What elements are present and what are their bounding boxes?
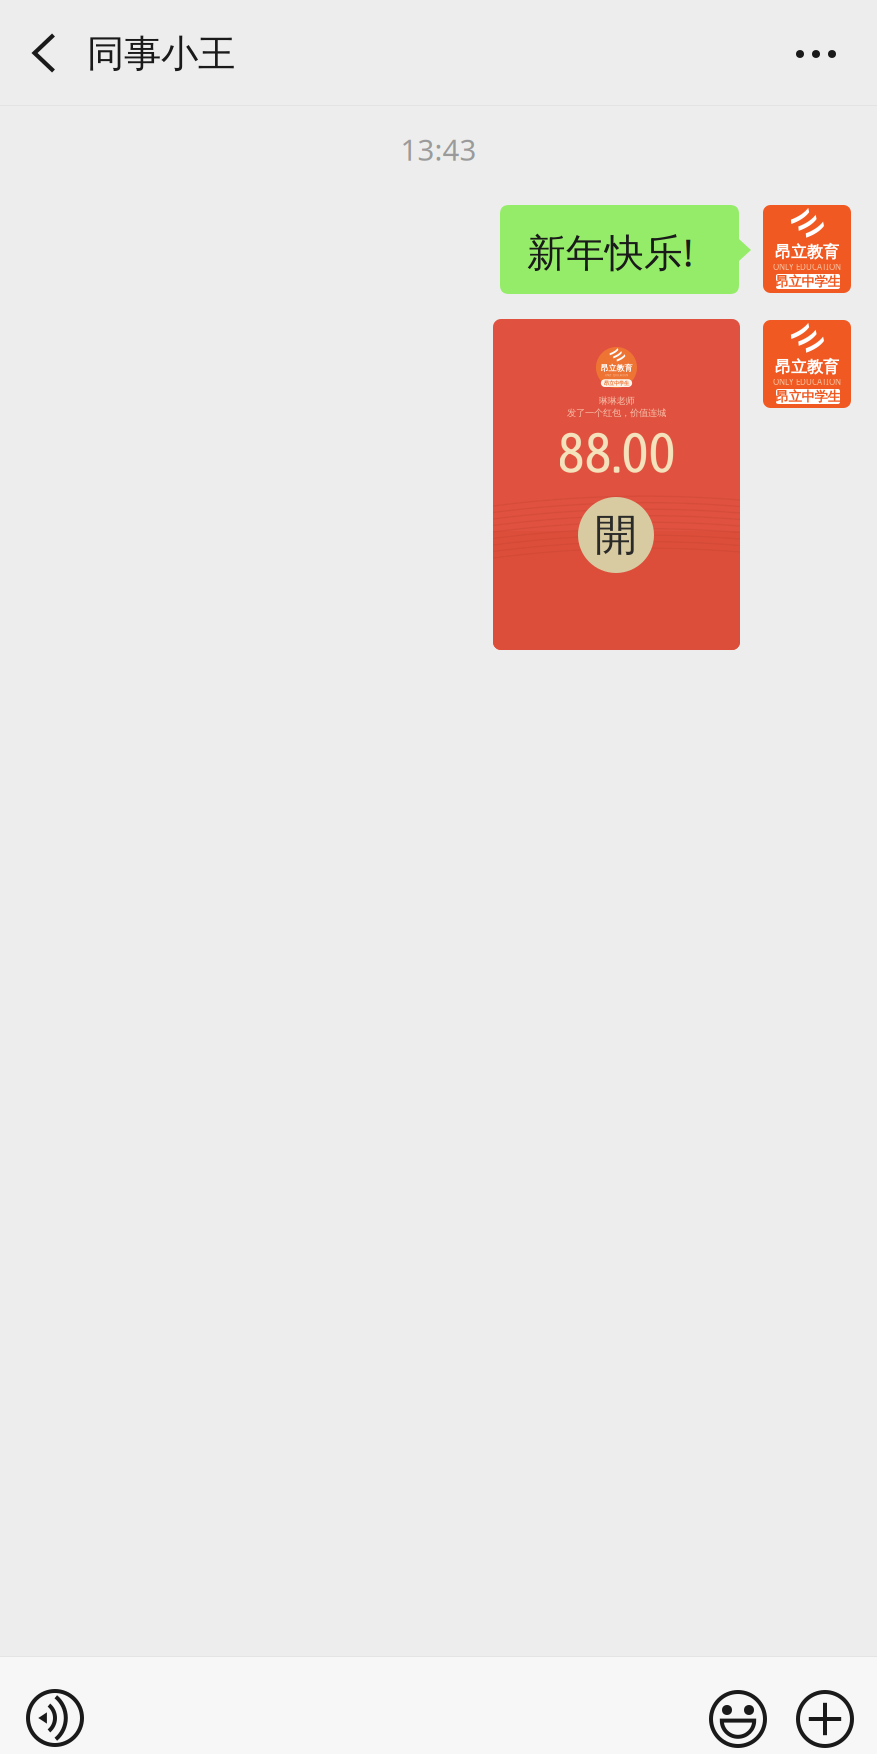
- staticText: 開: [594, 509, 637, 561]
- staticText: ONLY EDUCATION: [773, 377, 841, 387]
- button[interactable]: Voice message: [7, 1670, 103, 1754]
- staticText: 昂立教育: [775, 357, 839, 377]
- button[interactable]: More: [766, 8, 866, 100]
- staticText: 新年快乐!: [527, 226, 693, 277]
- staticText: 昂立中学生: [604, 380, 629, 386]
- staticText: 13:43: [400, 130, 476, 169]
- staticText: 发了一个红包，价值连城: [567, 407, 666, 419]
- button[interactable]: 昂立教育: [493, 319, 740, 650]
- staticText: 昂立教育: [775, 242, 839, 262]
- staticText: 同事小王: [87, 31, 235, 77]
- button[interactable]: More options: [777, 1671, 873, 1754]
- staticText: 昂立中学生: [775, 273, 840, 290]
- staticText: 昂立中学生: [775, 388, 840, 405]
- button[interactable]: Emoji keyboard: [690, 1671, 786, 1754]
- staticText: 昂立教育: [600, 363, 632, 373]
- staticText: 琳琳老师: [598, 395, 634, 407]
- staticText: ONLY EDUCATION: [773, 262, 841, 272]
- button[interactable]: Back: [6, 7, 82, 99]
- staticText: ONLY EDUCATION: [605, 373, 628, 377]
- staticText: 88.00: [557, 419, 675, 485]
